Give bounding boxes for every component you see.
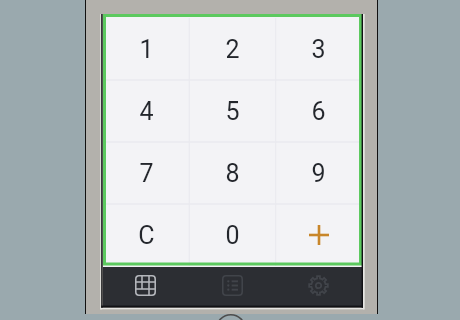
button[interactable]: 7 (103, 142, 189, 204)
other: Plus (309, 225, 329, 245)
staticText: C (138, 221, 155, 250)
button[interactable]: Keypad (103, 267, 190, 307)
staticText: 4 (139, 97, 154, 126)
staticText: 3 (311, 35, 326, 64)
staticText: 6 (311, 97, 326, 126)
staticText: 7 (139, 159, 154, 188)
button[interactable]: 2 (189, 18, 275, 80)
button[interactable]: Settings (276, 267, 362, 307)
button[interactable]: 3 (275, 18, 361, 80)
button[interactable]: 1 (103, 18, 189, 80)
staticText: 8 (225, 159, 240, 188)
button[interactable]: 9 (275, 142, 361, 204)
staticText: 5 (225, 97, 240, 126)
staticText: 9 (311, 159, 326, 188)
staticText: 2 (225, 35, 240, 64)
staticText: 1 (139, 35, 154, 64)
button[interactable]: 6 (275, 80, 361, 142)
button[interactable]: C (103, 204, 189, 266)
button[interactable]: 8 (189, 142, 275, 204)
staticText: 0 (225, 221, 240, 250)
button[interactable]: 5 (189, 80, 275, 142)
button[interactable]: 0 (189, 204, 275, 266)
button[interactable]: History (190, 267, 276, 307)
button[interactable]: Plus (275, 204, 361, 266)
button[interactable]: 4 (103, 80, 189, 142)
